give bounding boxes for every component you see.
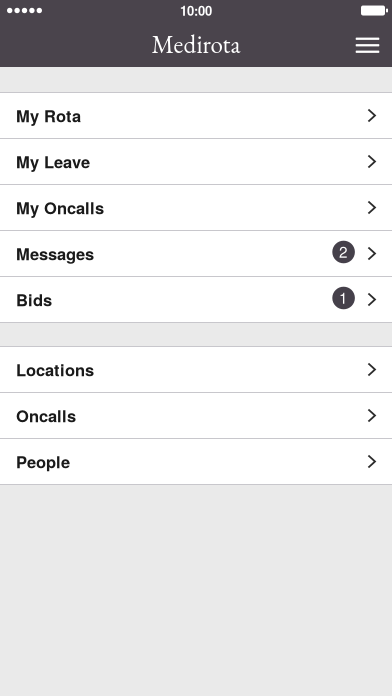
- staticText: 10:00: [180, 1, 212, 20]
- staticText: 2: [339, 240, 348, 262]
- button[interactable]: Locations: [0, 347, 392, 392]
- staticText: Messages: [16, 242, 94, 265]
- staticText: Bids: [16, 288, 52, 311]
- staticText: My Oncalls: [16, 196, 104, 219]
- button[interactable]: My Leave: [0, 139, 392, 184]
- staticText: People: [16, 450, 70, 473]
- button[interactable]: Bids: [0, 277, 392, 322]
- button[interactable]: Menu: [345, 22, 389, 66]
- button[interactable]: Oncalls: [0, 393, 392, 438]
- button[interactable]: My Oncalls: [0, 185, 392, 230]
- button[interactable]: My Rota: [0, 93, 392, 138]
- staticText: Medirota: [151, 28, 240, 60]
- staticText: Locations: [16, 358, 94, 381]
- staticText: Oncalls: [16, 404, 76, 427]
- staticText: 1: [339, 286, 348, 308]
- staticText: My Rota: [16, 104, 81, 127]
- staticText: My Leave: [16, 150, 90, 173]
- button[interactable]: Messages: [0, 231, 392, 276]
- button[interactable]: People: [0, 439, 392, 484]
